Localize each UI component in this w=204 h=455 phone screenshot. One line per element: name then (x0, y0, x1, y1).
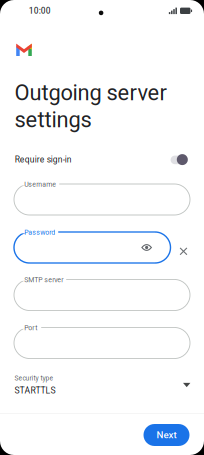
button[interactable]: Security type (14, 370, 190, 400)
staticText: settings (14, 107, 91, 133)
button[interactable]: Clear password (173, 241, 193, 261)
staticText: Password (24, 228, 55, 236)
staticText: Security type (14, 374, 53, 382)
staticText: 10:00 (29, 6, 51, 16)
staticText: Port (24, 324, 37, 332)
staticText: Require sign-in (15, 155, 72, 165)
staticText: SMTP server (24, 276, 63, 284)
button[interactable]: Require sign-in (15, 150, 188, 170)
staticText: Username (24, 180, 56, 188)
button[interactable]: Next (143, 424, 189, 446)
staticText: STARTTLS (14, 386, 55, 396)
staticText: Next (156, 429, 176, 441)
staticText: Outgoing server (14, 80, 166, 106)
